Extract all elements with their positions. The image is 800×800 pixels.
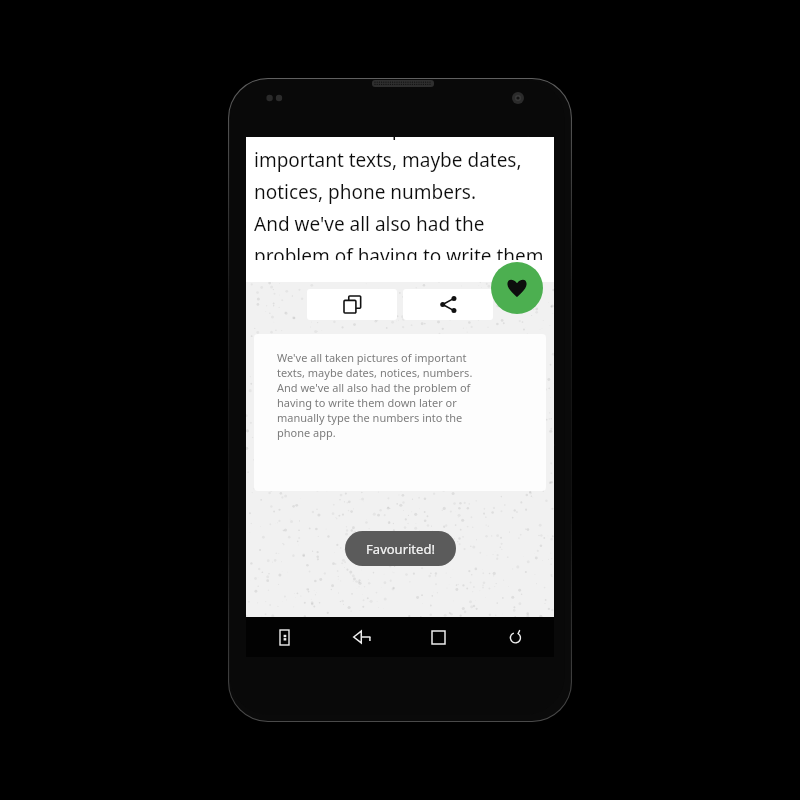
- button[interactable]: Recent apps: [246, 617, 323, 657]
- button[interactable]: Back: [323, 617, 400, 657]
- staticText: We've all taken pictures of important te…: [254, 137, 554, 260]
- button[interactable]: Copy: [307, 289, 397, 320]
- staticText: We've all taken pictures of important te…: [277, 350, 482, 440]
- button[interactable]: Share: [403, 289, 493, 320]
- button[interactable]: Home: [400, 617, 477, 657]
- button[interactable]: We've all taken pictures of important te…: [254, 334, 546, 491]
- button[interactable]: Favourite: [491, 262, 543, 314]
- button[interactable]: Rotate: [477, 617, 554, 657]
- button[interactable]: Favourited!: [345, 531, 456, 566]
- staticText: Favourited!: [366, 540, 435, 558]
